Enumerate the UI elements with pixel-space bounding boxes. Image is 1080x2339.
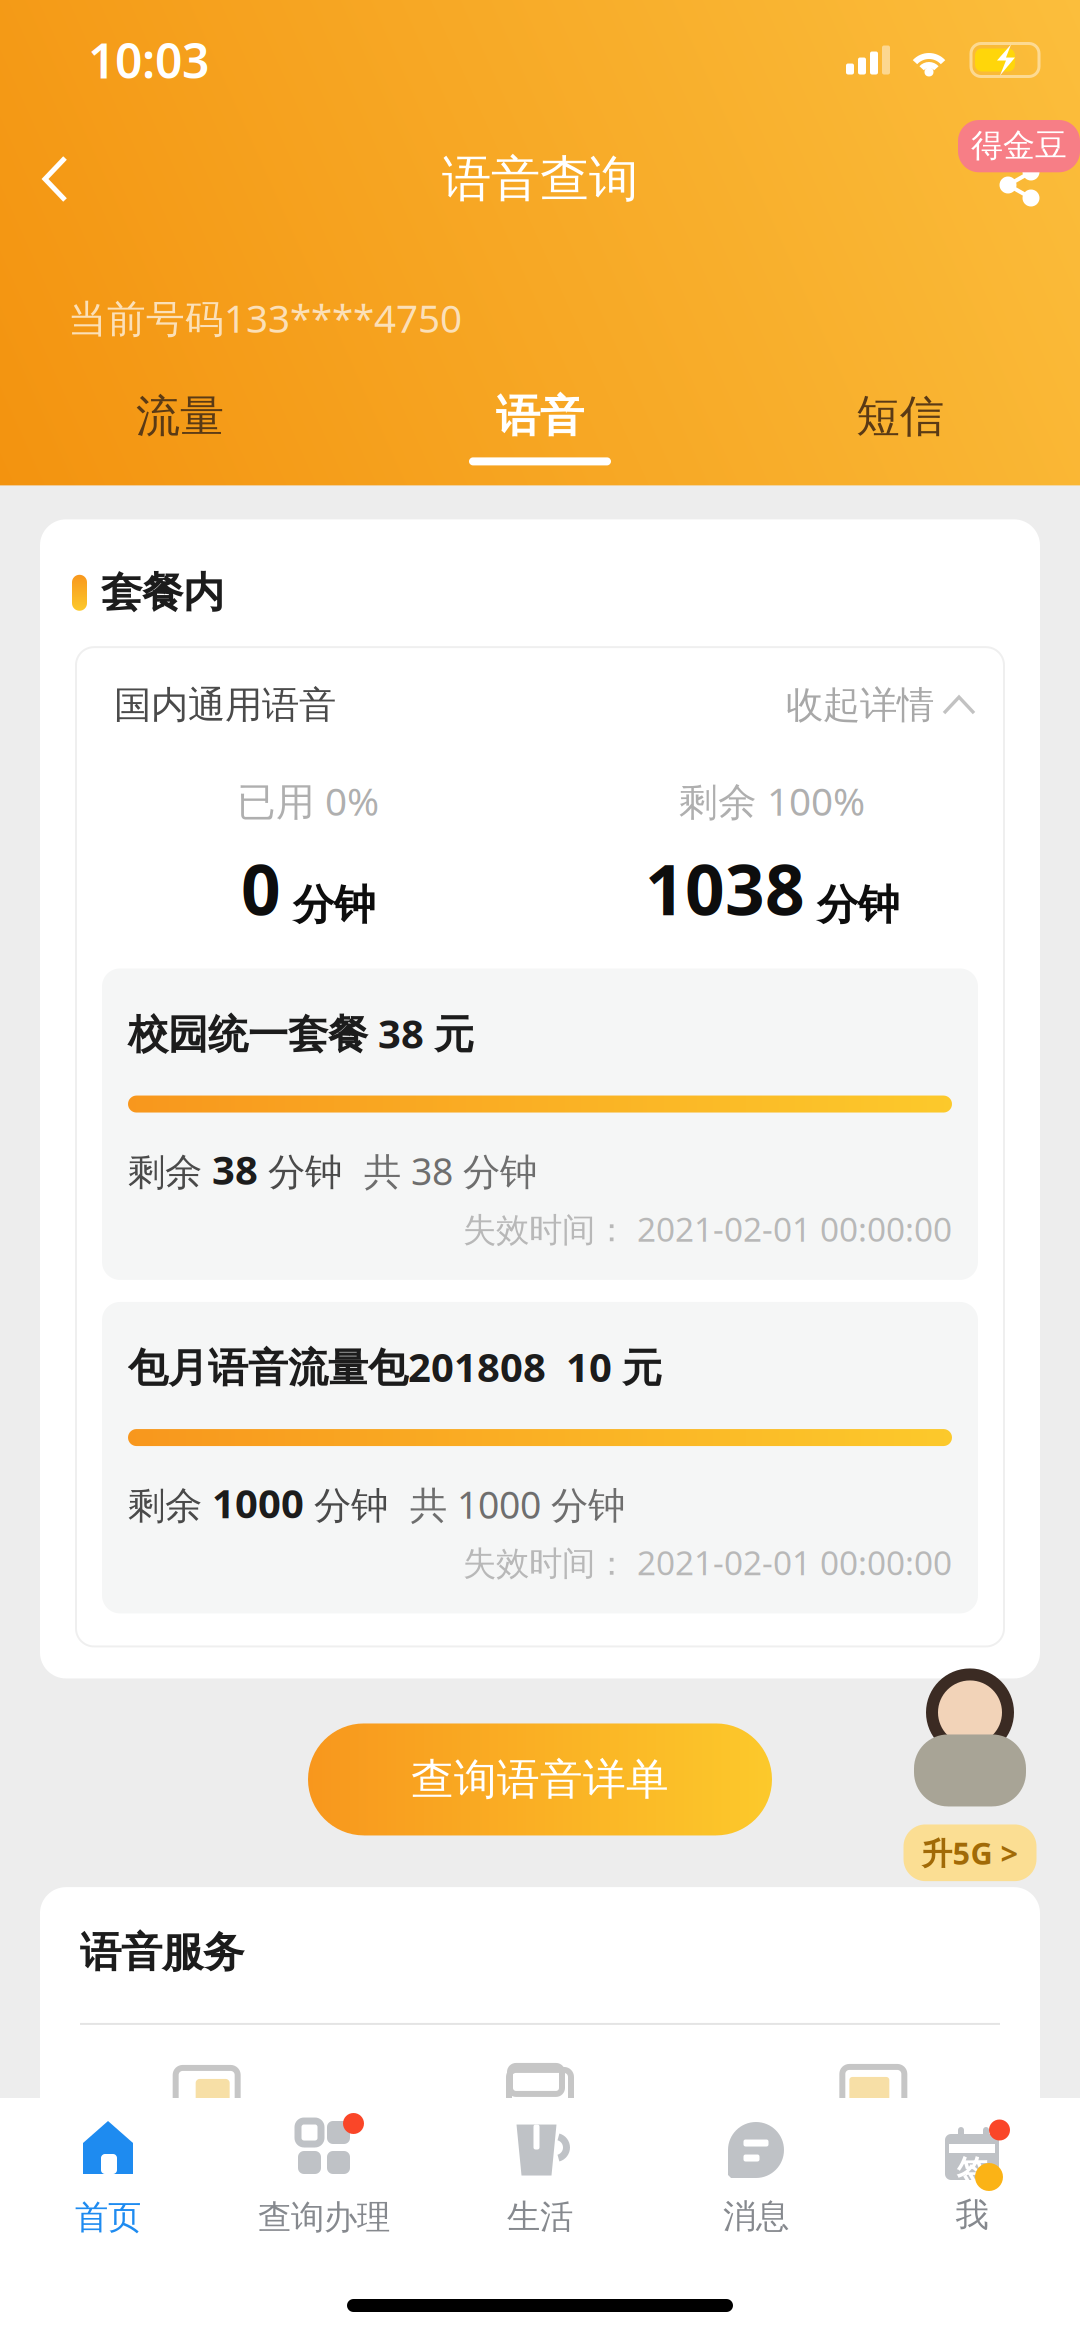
staticText: 消息 bbox=[723, 2196, 789, 2237]
staticText: 剩余 100% bbox=[679, 775, 865, 826]
staticText: 10:03 bbox=[88, 28, 209, 92]
staticText: 1038 bbox=[645, 842, 805, 934]
staticText: 短信 bbox=[856, 389, 944, 443]
button[interactable]: 流量 bbox=[0, 389, 360, 465]
staticText: 首页 bbox=[75, 2197, 141, 2238]
staticText: 分钟 bbox=[805, 880, 899, 930]
staticText: 语音查询 bbox=[442, 149, 638, 209]
button[interactable]: 签 bbox=[864, 2123, 1080, 2235]
button[interactable]: Upgrade to 5G bbox=[900, 1678, 1040, 1887]
button[interactable]: Share bbox=[940, 120, 1080, 238]
staticText: 语音服务 bbox=[80, 1927, 244, 1978]
button[interactable]: 国内通用语音 bbox=[76, 647, 1004, 728]
staticText: 语音 bbox=[496, 389, 584, 443]
staticText: 共 38 分钟 bbox=[342, 1146, 537, 1195]
staticText: 38 bbox=[202, 1143, 268, 1196]
button[interactable]: Service bbox=[707, 2053, 1040, 2111]
button[interactable]: Back bbox=[0, 124, 110, 234]
staticText: 失效时间： 2021-02-01 00:00:00 bbox=[463, 1540, 952, 1584]
staticText: 升5G > bbox=[921, 1832, 1018, 1873]
button[interactable]: 查询办理 bbox=[216, 2121, 432, 2238]
staticText: 查询办理 bbox=[258, 2197, 390, 2238]
staticText: 收起详情 bbox=[786, 682, 934, 728]
staticText: 得金豆 bbox=[971, 126, 1067, 165]
staticText: 0 bbox=[241, 842, 281, 934]
button[interactable]: 消息 bbox=[648, 2122, 864, 2237]
button[interactable]: 语音 bbox=[360, 389, 720, 465]
staticText: 签 bbox=[956, 2153, 987, 2191]
button[interactable]: 首页 bbox=[0, 2121, 216, 2238]
staticText: 失效时间： 2021-02-01 00:00:00 bbox=[463, 1207, 952, 1251]
staticText: 包月语音流量包201808 10 元 bbox=[128, 1340, 662, 1393]
staticText: 我 bbox=[955, 2194, 988, 2235]
staticText: 剩余 bbox=[128, 1483, 202, 1529]
button[interactable]: 短信 bbox=[720, 389, 1080, 465]
staticText: 分钟 bbox=[314, 1483, 388, 1529]
button[interactable]: Service bbox=[40, 2053, 373, 2111]
staticText: 已用 0% bbox=[237, 775, 379, 826]
staticText: 共 1000 分钟 bbox=[388, 1479, 625, 1529]
staticText: 1000 bbox=[202, 1476, 314, 1529]
staticText: 国内通用语音 bbox=[114, 682, 336, 728]
staticText: 剩余 bbox=[128, 1149, 202, 1195]
button[interactable]: Service bbox=[373, 2053, 707, 2111]
button[interactable]: 查询语音详单 bbox=[308, 1723, 772, 1835]
staticText: 分钟 bbox=[281, 880, 375, 930]
staticText: 生活 bbox=[507, 2196, 573, 2237]
button[interactable]: 生活 bbox=[432, 2121, 648, 2237]
staticText: 当前号码133****4750 bbox=[68, 292, 462, 343]
staticText: 流量 bbox=[136, 389, 224, 443]
staticText: 分钟 bbox=[268, 1149, 342, 1195]
staticText: 校园统一套餐 38 元 bbox=[128, 1006, 474, 1059]
staticText: 查询语音详单 bbox=[411, 1753, 669, 1806]
staticText: 套餐内 bbox=[101, 567, 224, 618]
